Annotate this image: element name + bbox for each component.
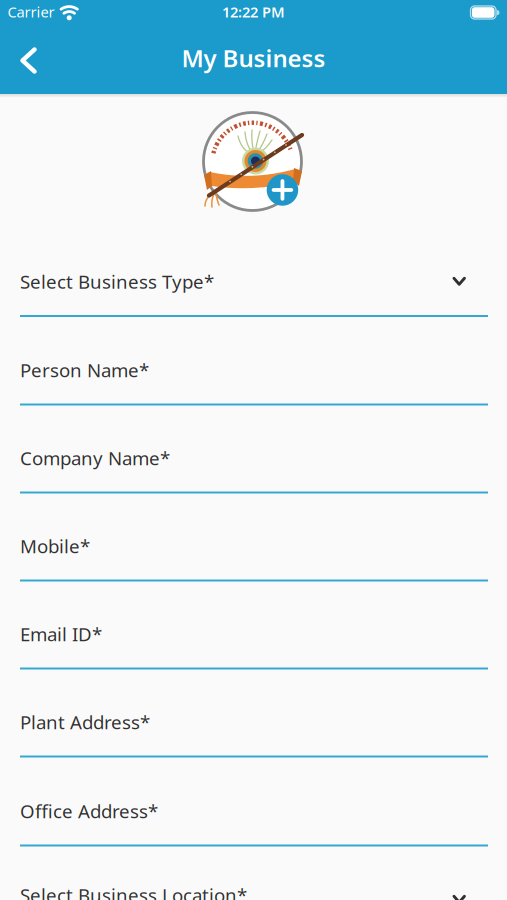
staticText: My Business [181,42,325,74]
button[interactable]: Back [9,39,53,83]
staticText: 12:22 PM [222,2,285,21]
staticText: Mobile* [20,533,90,558]
button[interactable]: Office Address* [20,794,488,846]
button[interactable]: Select Business Location* [20,878,488,900]
button[interactable]: Plant Address* [20,705,488,757]
staticText: Carrier [7,2,54,21]
staticText: Email ID* [20,621,102,646]
button[interactable]: Add photo [267,174,298,206]
button[interactable]: Select Business Type* [20,265,488,317]
staticText: Office Address* [20,798,158,823]
staticText: Company Name* [20,445,170,470]
staticText: Select Business Type* [20,269,214,294]
button[interactable]: Mobile* [20,529,488,581]
staticText: Select Business Location* [20,882,247,900]
button[interactable]: Company Name* [20,441,488,493]
staticText: Person Name* [20,357,149,382]
button[interactable]: Email ID* [20,617,488,669]
staticText: Plant Address* [20,709,150,734]
button[interactable]: Person Name* [20,353,488,405]
